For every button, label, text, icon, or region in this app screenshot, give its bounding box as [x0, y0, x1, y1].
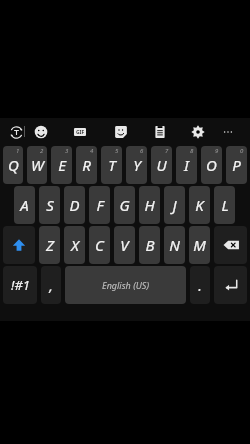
button[interactable]: !#1 — [3, 266, 37, 304]
staticText: 6 — [140, 147, 144, 155]
staticText: W — [31, 155, 44, 175]
button[interactable]: D — [64, 186, 85, 224]
staticText: F — [96, 195, 104, 215]
button[interactable]: S — [39, 186, 60, 224]
button[interactable]: Emoji — [30, 121, 52, 143]
button[interactable]: , — [41, 266, 61, 304]
button[interactable]: GIF — [69, 121, 91, 143]
button[interactable]: Shift — [3, 226, 35, 264]
staticText: 9 — [215, 147, 219, 155]
staticText: 2 — [40, 147, 44, 155]
staticText: J — [172, 195, 177, 215]
button[interactable]: K — [189, 186, 210, 224]
staticText: L — [221, 195, 229, 215]
button[interactable]: 3 — [51, 146, 72, 184]
button[interactable]: 5 — [101, 146, 122, 184]
staticText: 3 — [65, 147, 69, 155]
staticText: 5 — [115, 147, 119, 155]
button[interactable]: 1 — [3, 146, 23, 184]
staticText: . — [198, 276, 202, 295]
staticText: S — [46, 195, 54, 215]
staticText: I — [184, 155, 189, 175]
staticText: P — [232, 155, 241, 175]
staticText: English (US) — [102, 279, 149, 291]
button[interactable]: Translate — [5, 121, 27, 143]
button[interactable]: X — [64, 226, 85, 264]
staticText: O — [206, 155, 217, 175]
staticText: !#1 — [11, 276, 30, 294]
staticText: V — [120, 235, 129, 255]
staticText: E — [58, 155, 66, 175]
staticText: , — [49, 276, 53, 295]
button[interactable]: Backspace — [214, 226, 247, 264]
button[interactable]: 9 — [201, 146, 222, 184]
button[interactable]: Clipboard — [149, 121, 171, 143]
button[interactable]: 7 — [151, 146, 172, 184]
button[interactable]: Z — [39, 226, 60, 264]
staticText: M — [193, 235, 206, 255]
button[interactable]: 8 — [176, 146, 197, 184]
button[interactable]: J — [164, 186, 185, 224]
staticText: R — [82, 155, 91, 175]
button[interactable]: M — [189, 226, 210, 264]
staticText: GIF — [76, 129, 85, 136]
button[interactable]: N — [164, 226, 185, 264]
button[interactable]: H — [139, 186, 160, 224]
button[interactable]: English (US) — [65, 266, 186, 304]
staticText: N — [169, 235, 180, 255]
button[interactable]: Stickers — [110, 121, 132, 143]
staticText: Z — [46, 235, 54, 255]
button[interactable]: G — [114, 186, 135, 224]
staticText: T — [108, 155, 116, 175]
staticText: 1 — [16, 147, 20, 155]
button[interactable]: L — [214, 186, 235, 224]
button[interactable]: 4 — [76, 146, 97, 184]
button[interactable]: C — [89, 226, 110, 264]
button[interactable]: F — [89, 186, 110, 224]
button[interactable]: Enter — [214, 266, 247, 304]
staticText: 8 — [190, 147, 194, 155]
staticText: 0 — [240, 147, 244, 155]
staticText: A — [20, 195, 29, 215]
staticText: 4 — [90, 147, 94, 155]
button[interactable]: Settings — [187, 121, 209, 143]
staticText: C — [95, 235, 104, 255]
staticText: 7 — [165, 147, 169, 155]
button[interactable]: B — [139, 226, 160, 264]
staticText: G — [119, 195, 130, 215]
button[interactable]: V — [114, 226, 135, 264]
staticText: H — [144, 195, 155, 215]
staticText: B — [145, 235, 155, 255]
button[interactable]: A — [14, 186, 35, 224]
button[interactable]: 2 — [27, 146, 47, 184]
staticText: U — [156, 155, 167, 175]
button[interactable]: 6 — [126, 146, 147, 184]
staticText: X — [71, 235, 79, 255]
staticText: Y — [133, 155, 141, 175]
staticText: Q — [8, 155, 19, 175]
staticText: K — [195, 195, 204, 215]
button[interactable]: More options — [217, 121, 239, 143]
staticText: D — [69, 195, 80, 215]
button[interactable]: 0 — [226, 146, 247, 184]
button[interactable]: . — [190, 266, 210, 304]
